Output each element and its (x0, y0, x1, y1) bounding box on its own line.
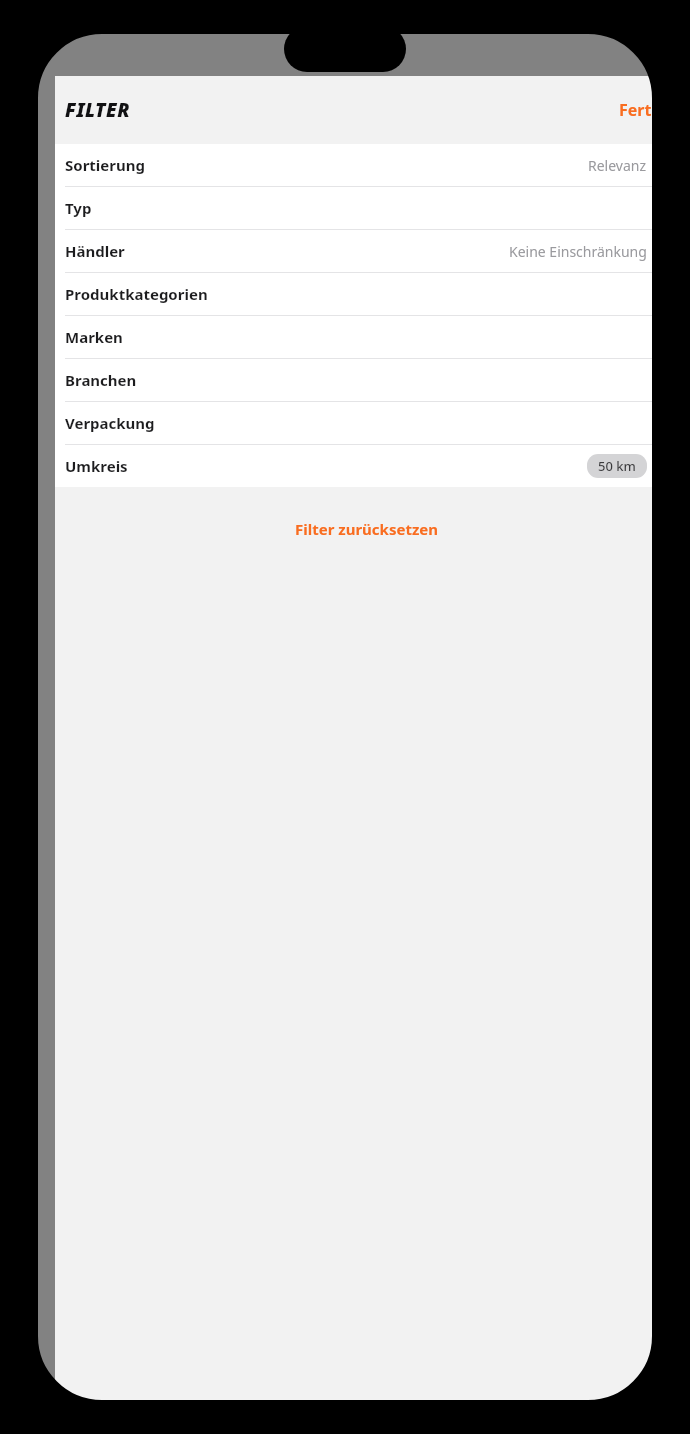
staticText: Umkreis (65, 456, 128, 476)
button[interactable]: Sortierung (55, 144, 656, 186)
button[interactable]: Filter zurücksetzen (281, 511, 452, 547)
staticText: 0,59 (44, 901, 83, 927)
button[interactable]: Verpackung (55, 402, 656, 444)
button[interactable]: Umkreis (55, 445, 656, 487)
staticText: Flasc (44, 807, 77, 825)
staticText: 1,59 (44, 1123, 72, 1142)
staticText: Dose (44, 537, 76, 555)
staticText: Free (44, 786, 73, 804)
staticText: 13,99 (44, 307, 80, 326)
staticText: 0,89 (44, 878, 72, 897)
staticText: Flasc (44, 1052, 77, 1070)
staticText: Verpackung (65, 413, 155, 433)
staticText: Lidl (44, 1297, 68, 1315)
button[interactable]: Produktkategorien (55, 273, 656, 315)
staticText: Gurk (44, 236, 76, 254)
staticText: Typ (65, 198, 92, 218)
staticText: Wein (44, 1276, 77, 1294)
button[interactable]: Typ (55, 187, 656, 229)
staticText: Filter zurücksetzen (295, 519, 438, 539)
staticText: FILTER (65, 97, 131, 123)
staticText: 428 (43, 91, 66, 109)
button[interactable]: Menu (42, 46, 68, 64)
staticText: Branchen (65, 370, 137, 390)
staticText: 50 km (598, 457, 636, 475)
staticText: Rauc (44, 516, 76, 534)
button[interactable]: Händler (55, 230, 656, 272)
staticText: 0,59 (44, 631, 83, 657)
staticText: 99 (44, 1368, 61, 1387)
staticText: 1,09 (44, 1146, 83, 1172)
button[interactable]: Marken (55, 316, 656, 358)
staticText: 8,99 (44, 330, 83, 356)
staticText: 1,19 (44, 608, 72, 627)
staticText: Keine Einschränkung (509, 242, 647, 261)
staticText: Relevanz (588, 156, 647, 175)
staticText: Coca (44, 1031, 75, 1049)
staticText: Fertig (619, 99, 656, 121)
button[interactable]: Fertig (613, 93, 656, 127)
button[interactable]: Branchen (55, 359, 656, 401)
staticText: Marken (65, 327, 123, 347)
staticText: Händler (65, 241, 125, 261)
staticText: Produktkategorien (65, 284, 208, 304)
staticText: Sortierung (65, 155, 145, 175)
